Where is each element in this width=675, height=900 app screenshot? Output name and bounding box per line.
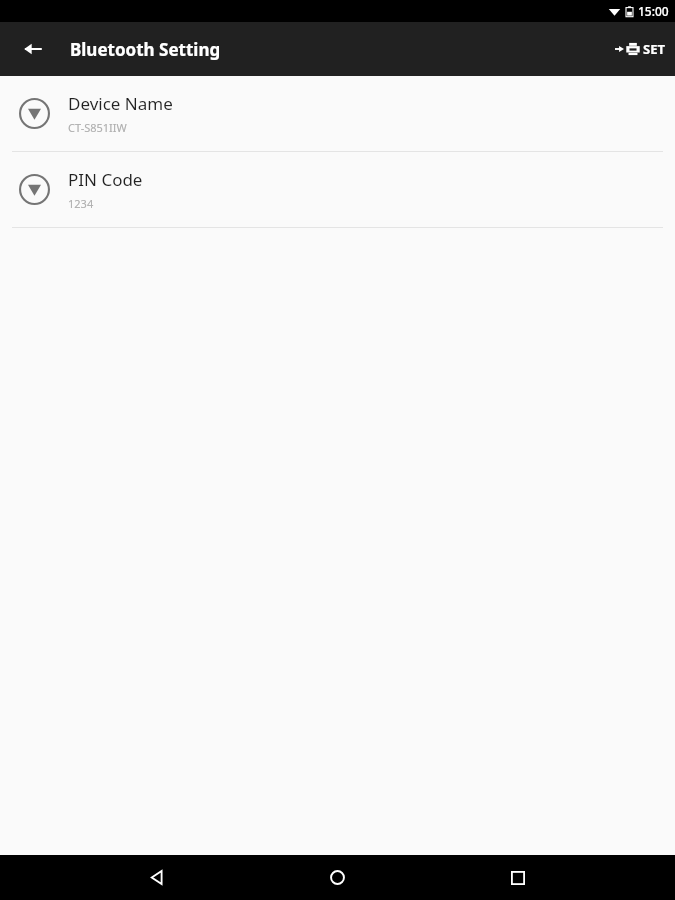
staticText: SET [643, 40, 665, 58]
button[interactable]: Send settings to printer [613, 34, 667, 64]
button[interactable]: Back [13, 29, 53, 69]
button[interactable]: Back [132, 855, 180, 900]
button[interactable]: Home [313, 855, 361, 900]
button[interactable]: Device Name [0, 76, 675, 151]
button[interactable]: Recent apps [494, 855, 542, 900]
staticText: 1234 [68, 196, 94, 211]
staticText: PIN Code [68, 168, 143, 191]
staticText: 15:00 [638, 3, 669, 19]
staticText: CT-S851IIW [68, 120, 127, 135]
staticText: Device Name [68, 92, 173, 115]
staticText: Bluetooth Setting [70, 38, 221, 61]
button[interactable]: PIN Code [0, 152, 675, 227]
